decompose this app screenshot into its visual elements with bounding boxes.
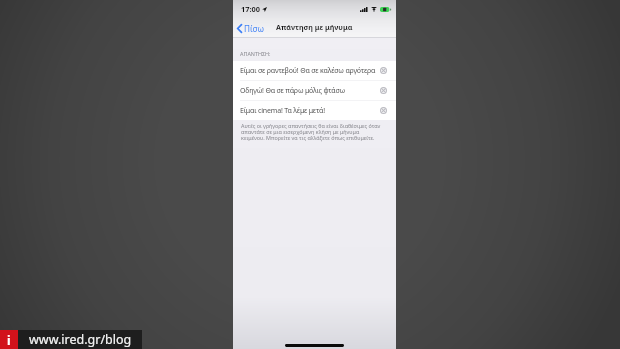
- button[interactable]: Είμαι cinema! Τα λέμε μετά!: [233, 101, 396, 120]
- other: Clear: [380, 67, 387, 74]
- button[interactable]: Πίσω: [233, 21, 268, 36]
- staticText: Είμαι cinema! Τα λέμε μετά!: [240, 105, 325, 116]
- staticText: 17:00: [241, 4, 260, 14]
- other: Clear: [380, 107, 387, 114]
- staticText: i: [7, 332, 11, 348]
- other: Clear: [380, 87, 387, 94]
- staticText: Είμαι σε ραντεβού! Θα σε καλέσω αργότερα: [240, 65, 376, 76]
- staticText: www.ired.gr/blog: [29, 331, 132, 348]
- staticText: ΑΠΑΝΤΗΣΗ:: [240, 50, 271, 57]
- button[interactable]: Οδηγώ! Θα σε πάρω μόλις φτάσω: [233, 81, 396, 100]
- staticText: Πίσω: [244, 23, 264, 34]
- staticText: Αυτές οι γρήγορες απαντήσεις θα είναι δι…: [241, 122, 381, 142]
- staticText: Απάντηση με μήνυμα: [276, 22, 353, 32]
- staticText: Οδηγώ! Θα σε πάρω μόλις φτάσω: [240, 85, 345, 96]
- button[interactable]: Είμαι σε ραντεβού! Θα σε καλέσω αργότερα: [233, 61, 396, 80]
